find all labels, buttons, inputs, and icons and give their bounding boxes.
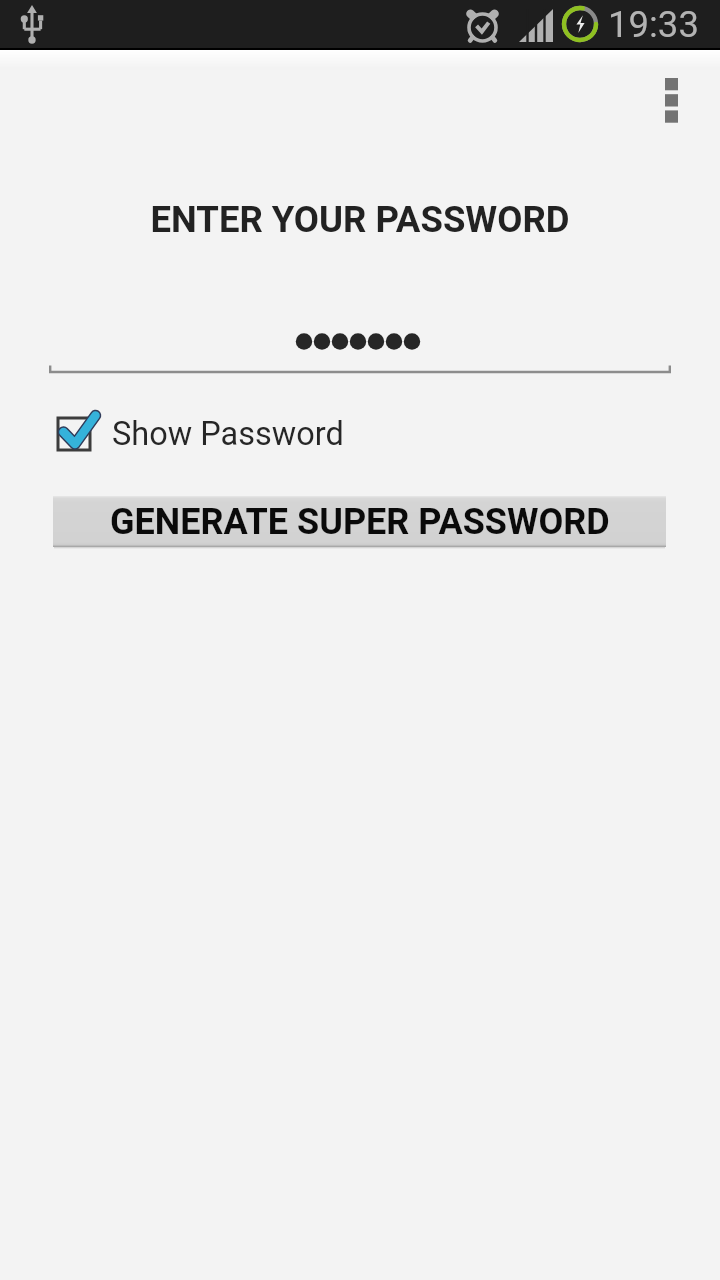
button[interactable]: GENERATE SUPER PASSWORD	[53, 496, 666, 547]
button[interactable]: Password input	[49, 320, 671, 373]
button[interactable]: More options	[641, 62, 701, 138]
staticText: ENTER YOUR PASSWORD	[0, 198, 720, 241]
staticText: GENERATE SUPER PASSWORD	[110, 501, 610, 543]
button[interactable]: Show Password	[50, 408, 344, 460]
staticText: Show Password	[112, 415, 344, 453]
staticText: 19:33	[608, 3, 699, 46]
